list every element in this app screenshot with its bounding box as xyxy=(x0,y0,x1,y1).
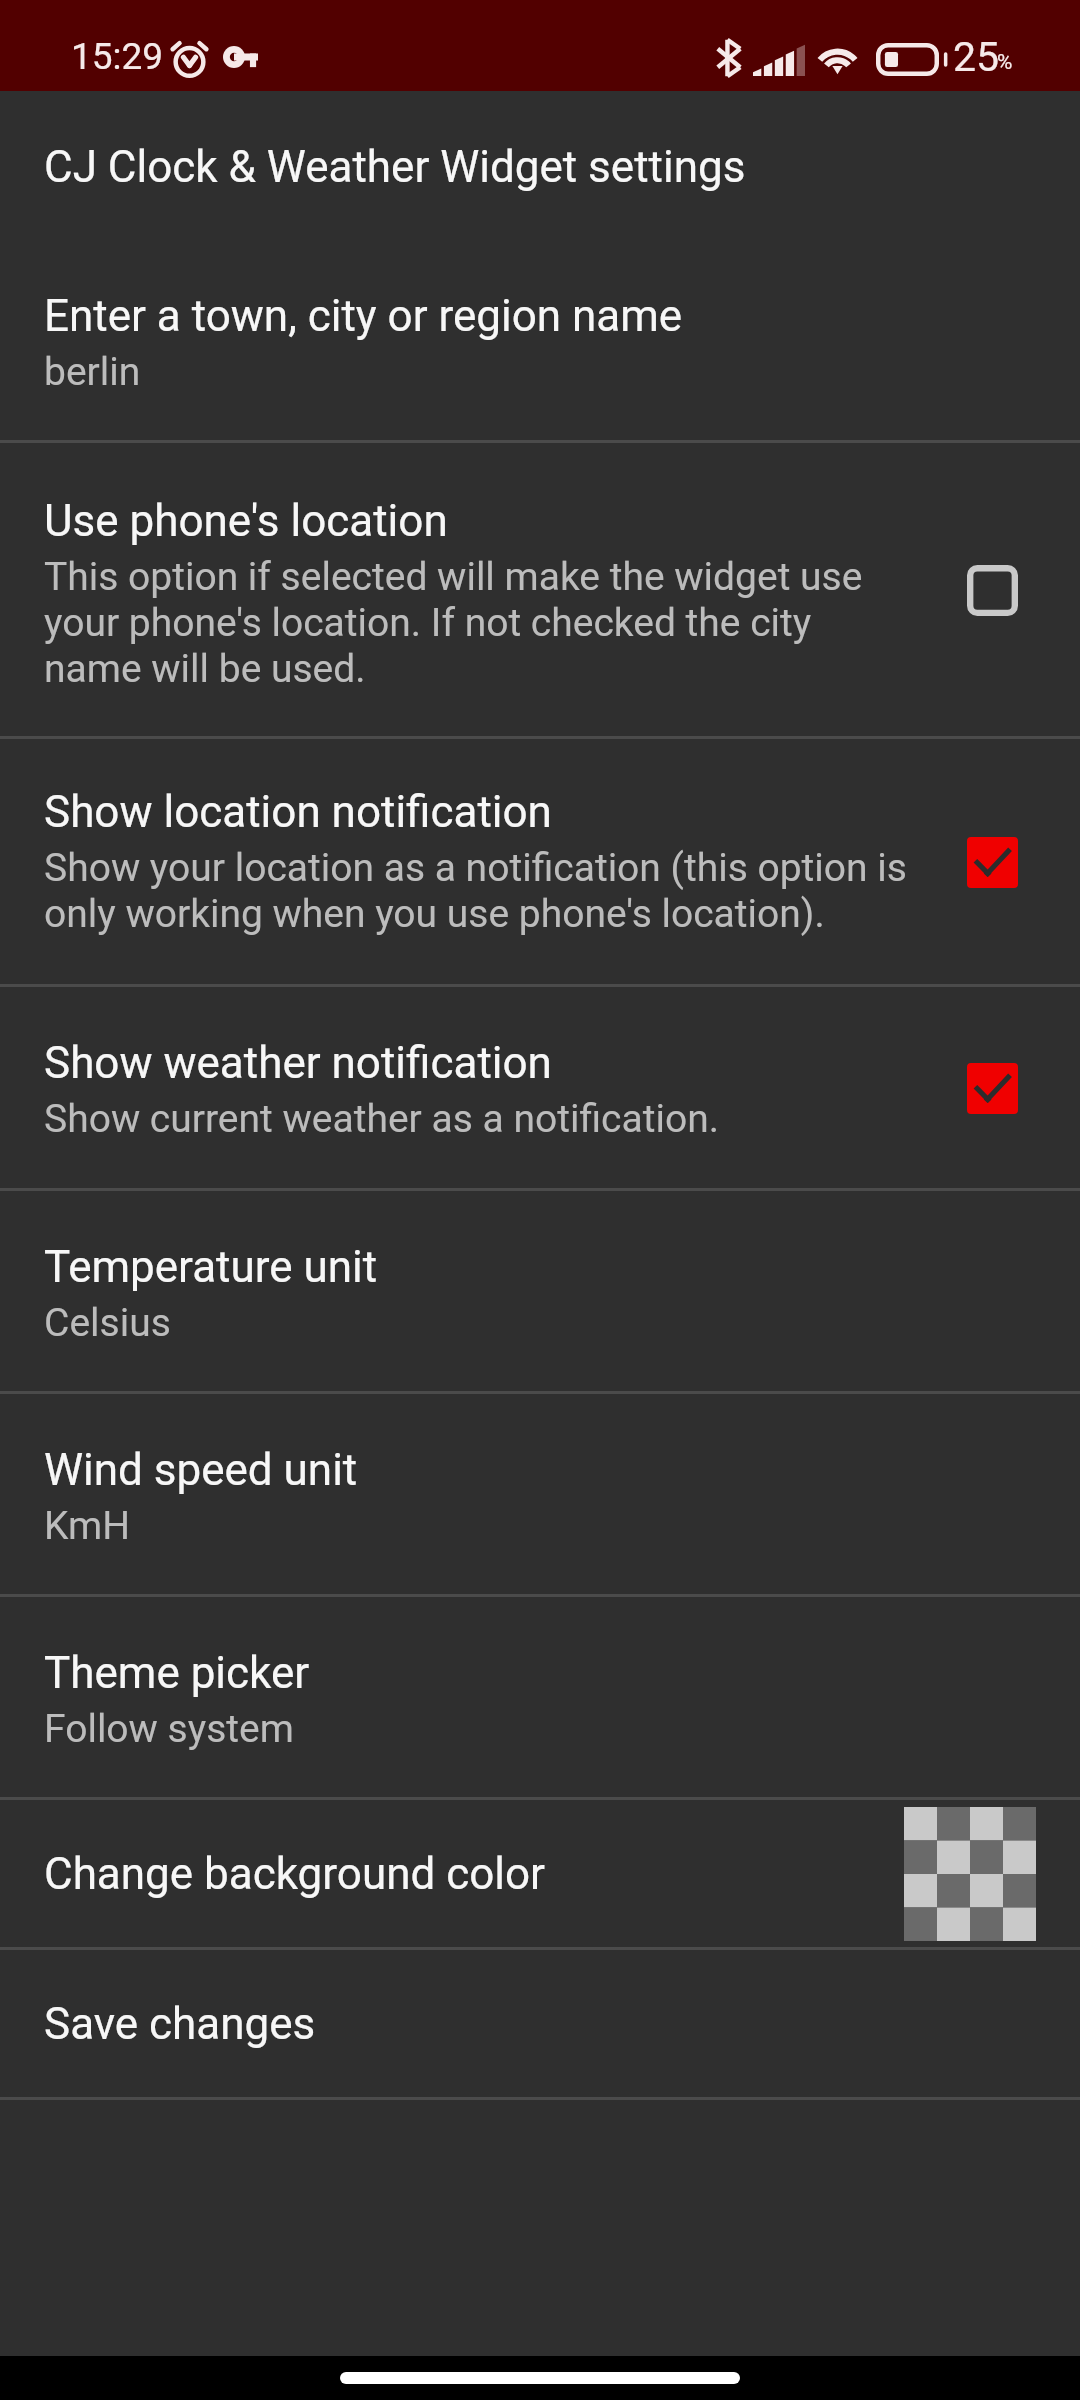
button[interactable]: Home gesture handle xyxy=(340,2372,740,2384)
staticText: Theme picker xyxy=(44,1647,310,1699)
staticText: Show current weather as a notification. xyxy=(44,1096,719,1142)
button[interactable]: Unchecked, tap to turn on xyxy=(950,548,1034,632)
staticText: Change background color xyxy=(44,1848,904,1900)
staticText: berlin xyxy=(44,349,141,395)
button[interactable]: Temperature unit xyxy=(0,1191,1080,1391)
staticText: Enter a town, city or region name xyxy=(44,290,683,342)
staticText: % xyxy=(997,50,1013,75)
staticText: 15:29 xyxy=(71,35,164,78)
other: VPN active xyxy=(223,46,258,68)
button[interactable]: Enter a town, city or region name xyxy=(0,239,1080,440)
staticText: 25 xyxy=(953,33,1000,81)
button[interactable]: Use phone's location xyxy=(0,443,1080,736)
staticText: Temperature unit xyxy=(44,1241,378,1293)
staticText: KmH xyxy=(44,1503,131,1549)
other: Alarm set xyxy=(170,39,209,76)
staticText: Save changes xyxy=(44,1998,316,2050)
button[interactable]: Theme picker xyxy=(0,1597,1080,1797)
staticText: Show weather notification xyxy=(44,1037,552,1089)
staticText: Show location notification xyxy=(44,786,552,838)
button[interactable]: Checked, tap to turn off xyxy=(950,1046,1034,1130)
staticText: This option if selected will make the wi… xyxy=(44,554,912,692)
other: Mobile signal four bars xyxy=(753,42,805,76)
other: Wi-Fi connected xyxy=(813,41,862,75)
button[interactable]: Show location notification xyxy=(0,739,1080,984)
other: Background colour swatch xyxy=(904,1807,1036,1941)
button[interactable]: Save changes xyxy=(0,1950,1080,2097)
staticText: Wind speed unit xyxy=(44,1444,358,1496)
other: Battery 25 percent xyxy=(876,43,946,76)
button[interactable]: Wind speed unit xyxy=(0,1394,1080,1594)
button[interactable]: Show weather notification xyxy=(0,987,1080,1188)
staticText: CJ Clock & Weather Widget settings xyxy=(44,141,746,193)
staticText: Follow system xyxy=(44,1706,294,1752)
button[interactable]: Checked, tap to turn off xyxy=(950,820,1034,904)
staticText: Use phone's location xyxy=(44,495,448,547)
staticText: Celsius xyxy=(44,1300,171,1346)
button[interactable]: Change background color xyxy=(0,1800,1080,1947)
other: Bluetooth on xyxy=(716,38,742,78)
staticText: Show your location as a notification (th… xyxy=(44,845,912,937)
